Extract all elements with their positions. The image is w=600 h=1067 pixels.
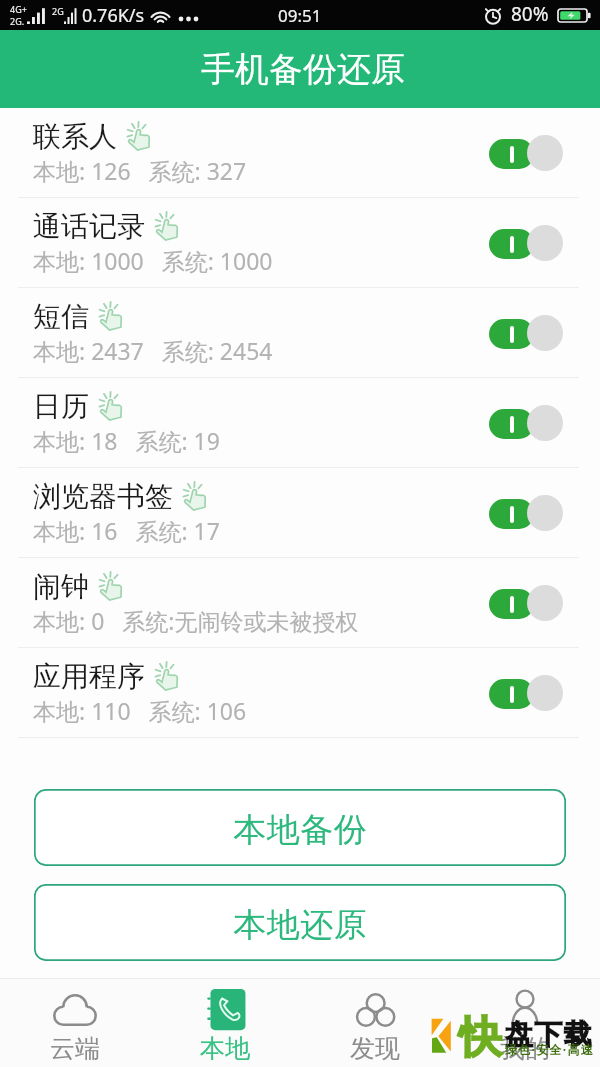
button[interactable]: 联系人 bbox=[0, 108, 600, 198]
staticText: 云端 bbox=[50, 1033, 100, 1064]
staticText: 手机备份还原 bbox=[201, 48, 405, 91]
staticText: 80% bbox=[511, 1, 549, 27]
staticText: 盘下载 bbox=[505, 1017, 593, 1052]
button[interactable]: 本地 bbox=[150, 979, 300, 1067]
button[interactable]: 应用程序 bbox=[0, 648, 600, 738]
button[interactable]: 云端 bbox=[0, 979, 150, 1067]
staticText: 本地: 2437 系统: 2454 bbox=[33, 335, 273, 366]
button[interactable]: 通话记录 bbox=[0, 198, 600, 288]
button[interactable]: 日历 bbox=[0, 378, 600, 468]
button[interactable]: 本地备份 bbox=[34, 789, 566, 866]
staticText: 快 bbox=[459, 1011, 502, 1065]
staticText: 我的 bbox=[500, 1033, 550, 1064]
button[interactable]: 发现 bbox=[300, 979, 450, 1067]
staticText: 本地: 110 系统: 106 bbox=[33, 695, 247, 726]
staticText: 2G. bbox=[10, 15, 25, 27]
button[interactable]: 闹钟 bbox=[0, 558, 600, 648]
staticText: 本地 bbox=[200, 1033, 250, 1064]
staticText: 4G+ bbox=[10, 3, 27, 15]
staticText: 本地: 0 系统:无闹铃或未被授权 bbox=[33, 605, 359, 636]
staticText: 通话记录 bbox=[33, 209, 145, 244]
staticText: 短信 bbox=[33, 299, 89, 334]
staticText: 应用程序 bbox=[33, 659, 145, 694]
button[interactable]: 开关 bbox=[489, 223, 559, 263]
staticText: 本地: 126 系统: 327 bbox=[33, 155, 247, 186]
staticText: 本地还原 bbox=[233, 904, 367, 946]
button[interactable]: 开关 bbox=[489, 403, 559, 443]
staticText: 联系人 bbox=[33, 119, 117, 154]
button[interactable]: 开关 bbox=[489, 583, 559, 623]
button[interactable]: 短信 bbox=[0, 288, 600, 378]
staticText: 09:51 bbox=[278, 4, 322, 27]
staticText: 本地: 16 系统: 17 bbox=[33, 515, 220, 546]
button[interactable]: 开关 bbox=[489, 493, 559, 533]
staticText: 本地: 18 系统: 19 bbox=[33, 425, 220, 456]
staticText: 闹钟 bbox=[33, 569, 89, 604]
button[interactable]: 我的 bbox=[450, 979, 600, 1067]
staticText: 本地备份 bbox=[233, 809, 367, 851]
button[interactable]: 开关 bbox=[489, 673, 559, 713]
staticText: 0.76K/s bbox=[82, 3, 145, 28]
button[interactable]: 本地还原 bbox=[34, 884, 566, 961]
button[interactable]: 开关 bbox=[489, 133, 559, 173]
button[interactable]: 开关 bbox=[489, 313, 559, 353]
staticText: 2G bbox=[52, 5, 64, 17]
button[interactable]: 浏览器书签 bbox=[0, 468, 600, 558]
staticText: 发现 bbox=[350, 1033, 400, 1064]
staticText: 日历 bbox=[33, 389, 89, 424]
staticText: 浏览器书签 bbox=[33, 479, 173, 514]
staticText: 绿色·安全·高速 bbox=[505, 1041, 595, 1057]
staticText: 本地: 1000 系统: 1000 bbox=[33, 245, 273, 276]
